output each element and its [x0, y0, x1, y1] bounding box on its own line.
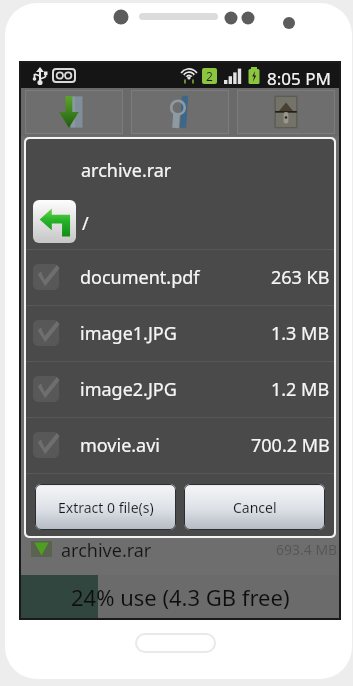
staticText: 700.2 MB [251, 433, 330, 458]
staticText: 1.2 MB [271, 377, 330, 402]
button[interactable]: image2.JPG [26, 361, 334, 417]
staticText: 263 KB [271, 265, 330, 290]
staticText: archive.rar [61, 538, 152, 563]
staticText: / [82, 211, 89, 236]
staticText: archive.rar [81, 158, 172, 183]
staticText: 1.3 MB [271, 321, 330, 346]
button[interactable]: document.pdf [26, 249, 334, 305]
button[interactable]: Extract [25, 90, 123, 134]
staticText: document.pdf [80, 265, 200, 290]
staticText: Cancel [233, 498, 277, 517]
staticText: image2.JPG [80, 377, 177, 402]
staticText: 2 [206, 68, 213, 84]
button[interactable]: Extract 0 file(s) [35, 484, 176, 530]
button[interactable]: Preview [237, 90, 335, 134]
button[interactable]: movie.avi [26, 417, 334, 473]
button[interactable]: Search [131, 90, 229, 134]
button[interactable]: Up one level [33, 200, 76, 243]
button[interactable]: Cancel [184, 484, 325, 530]
button[interactable]: archive.rar [21, 537, 339, 575]
staticText: Extract 0 file(s) [58, 498, 154, 517]
staticText: 8:05 PM [267, 67, 331, 90]
button[interactable]: image1.JPG [26, 305, 334, 361]
staticText: image1.JPG [80, 321, 177, 346]
staticText: movie.avi [80, 433, 161, 458]
staticText: 24% use (4.3 GB free) [71, 582, 290, 612]
staticText: 693.4 MB [276, 540, 338, 559]
